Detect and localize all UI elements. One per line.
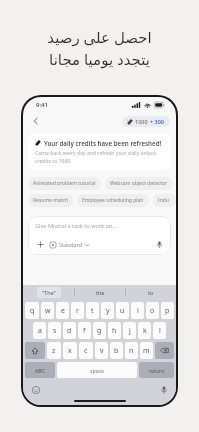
staticText: Resume match xyxy=(33,197,68,204)
button[interactable]: Animated problem tutorial xyxy=(28,177,101,190)
button[interactable]: u xyxy=(116,302,129,319)
button[interactable]: Dictation xyxy=(158,384,169,395)
button[interactable]: t xyxy=(86,302,99,319)
button[interactable]: Employee scheduling plan xyxy=(77,194,149,207)
staticText: Standard xyxy=(59,241,83,248)
staticText: d xyxy=(67,326,72,336)
button[interactable]: Add attachment xyxy=(35,239,45,249)
staticText: h xyxy=(112,326,117,336)
button[interactable]: b xyxy=(110,342,123,359)
button[interactable]: j xyxy=(123,322,136,339)
button[interactable]: z xyxy=(47,342,61,359)
staticText: + 300 xyxy=(150,118,165,125)
button[interactable]: Give Mistral a task to work on… xyxy=(28,216,171,255)
button[interactable]: Standard xyxy=(50,241,89,248)
staticText: l xyxy=(159,326,161,336)
staticText: b xyxy=(114,346,119,356)
staticText: u xyxy=(120,306,125,316)
staticText: s xyxy=(53,326,57,336)
staticText: Animated problem tutorial xyxy=(33,180,96,187)
staticText: يتجدد يوميا مجانا xyxy=(49,49,150,69)
staticText: c xyxy=(84,346,88,356)
button[interactable]: e xyxy=(56,302,69,319)
staticText: v xyxy=(100,346,104,356)
button[interactable]: space xyxy=(57,362,137,378)
button[interactable]: h xyxy=(108,322,121,339)
staticText: j xyxy=(129,326,131,336)
button[interactable]: Your daily credits have been refreshed! xyxy=(28,133,171,170)
button[interactable]: f xyxy=(78,322,91,339)
button[interactable]: ABC xyxy=(25,362,55,378)
button[interactable]: return xyxy=(139,362,174,378)
button[interactable]: n xyxy=(125,342,138,359)
staticText: space xyxy=(90,367,105,374)
staticText: return xyxy=(149,367,165,374)
button[interactable]: Emoji xyxy=(30,384,41,395)
button[interactable]: i xyxy=(131,302,144,319)
button[interactable]: r xyxy=(71,302,84,319)
button[interactable]: k xyxy=(138,322,151,339)
button[interactable]: Indust xyxy=(153,194,176,207)
staticText: Your daily credits have been refreshed! xyxy=(44,139,162,147)
button[interactable]: Backspace xyxy=(155,342,174,359)
staticText: z xyxy=(52,346,56,356)
staticText: Give Mistral a task to work on… xyxy=(35,222,117,230)
button[interactable]: w xyxy=(41,302,54,319)
button[interactable]: q xyxy=(25,302,39,319)
staticText: p xyxy=(165,306,170,316)
staticText: r xyxy=(76,306,79,316)
staticText: "The" xyxy=(42,289,56,296)
button[interactable]: 1000 xyxy=(122,116,170,127)
button[interactable]: Back xyxy=(29,114,43,128)
staticText: m xyxy=(143,346,150,356)
button[interactable]: c xyxy=(79,342,93,359)
button[interactable]: x xyxy=(63,342,77,359)
staticText: n xyxy=(129,346,134,356)
staticText: y xyxy=(106,306,110,316)
staticText: 1000 xyxy=(135,118,148,125)
button[interactable]: to xyxy=(126,285,176,300)
staticText: w xyxy=(45,306,51,316)
button[interactable]: a xyxy=(33,322,46,339)
staticText: q xyxy=(30,306,35,316)
staticText: Employee scheduling plan xyxy=(82,197,144,204)
staticText: i xyxy=(137,306,139,316)
button[interactable]: g xyxy=(93,322,106,339)
button[interactable]: l xyxy=(153,322,166,339)
staticText: a xyxy=(38,326,42,336)
staticText: Webcam object detector xyxy=(110,180,168,187)
button[interactable]: o xyxy=(146,302,159,319)
staticText: to xyxy=(148,289,154,296)
staticText: Come back every day and refresh your dai… xyxy=(35,150,164,164)
button[interactable]: y xyxy=(101,302,114,319)
staticText: x xyxy=(68,346,72,356)
button[interactable]: Resume match xyxy=(28,194,73,207)
button[interactable]: p xyxy=(161,302,174,319)
staticText: احصل على رصيد xyxy=(47,27,152,47)
staticText: Indust xyxy=(158,197,171,204)
staticText: e xyxy=(61,306,65,316)
staticText: 9:41 xyxy=(36,101,48,109)
staticText: t xyxy=(91,306,94,316)
staticText: g xyxy=(97,326,102,336)
staticText: f xyxy=(83,326,86,336)
staticText: ABC xyxy=(35,367,45,374)
button[interactable]: "The" xyxy=(23,285,74,300)
button[interactable]: the xyxy=(75,285,125,300)
staticText: the xyxy=(96,289,105,296)
button[interactable]: Shift xyxy=(25,342,45,359)
button[interactable]: Voice input xyxy=(154,239,164,249)
staticText: k xyxy=(143,326,147,336)
button[interactable]: m xyxy=(140,342,153,359)
button[interactable]: s xyxy=(48,322,61,339)
button[interactable]: d xyxy=(63,322,76,339)
button[interactable]: v xyxy=(95,342,108,359)
staticText: o xyxy=(150,306,155,316)
button[interactable]: Webcam object detector xyxy=(105,177,173,190)
